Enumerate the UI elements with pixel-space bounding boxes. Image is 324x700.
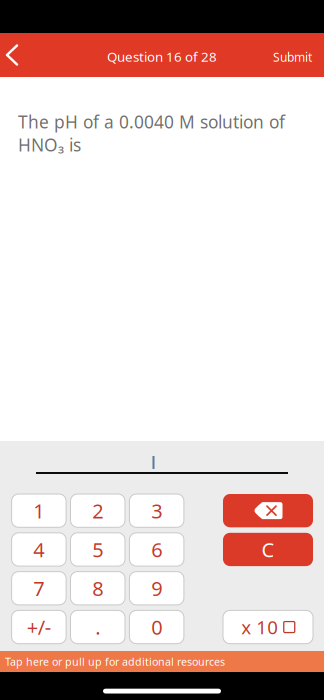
button[interactable]: Clear [223,533,313,566]
staticText: 7 [33,575,44,602]
button[interactable]: 2 [70,494,125,527]
button[interactable]: Tap here or pull up for additional resou… [0,651,324,672]
button[interactable]: Submit [273,33,324,77]
button[interactable]: 0 [129,610,184,644]
staticText: 6 [151,536,162,563]
button[interactable]: 5 [70,533,125,566]
button[interactable]: 8 [70,572,125,605]
staticText: Tap here or pull up for additional resou… [5,654,225,669]
button[interactable]: +/- [12,610,66,644]
button[interactable]: Times ten to the power [223,610,313,644]
staticText: +/- [27,614,51,640]
staticText: 2 [92,497,103,524]
staticText: 8 [92,575,103,602]
staticText: x 10 [241,615,278,639]
button[interactable]: Back [0,33,40,77]
staticText: 0 [151,614,162,640]
button[interactable]: Delete [223,494,313,527]
button[interactable]: 9 [129,572,184,605]
staticText: Submit [273,49,312,65]
button[interactable]: 4 [12,533,66,566]
staticText: Question 16 of 28 [107,48,217,65]
staticText: 3 [151,497,162,524]
button[interactable]: 3 [129,494,184,527]
staticText: 4 [33,536,44,563]
button[interactable]: 1 [12,494,66,527]
staticText: 5 [92,536,103,563]
staticText: C [261,536,274,563]
staticText: The pH of a 0.0040 M solution of HNO₃ is [18,110,285,156]
button[interactable]: . [70,610,125,644]
button[interactable]: 7 [12,572,66,605]
staticText: . [95,614,100,640]
staticText: 1 [33,497,44,524]
button[interactable]: 6 [129,533,184,566]
staticText: 9 [151,575,162,602]
